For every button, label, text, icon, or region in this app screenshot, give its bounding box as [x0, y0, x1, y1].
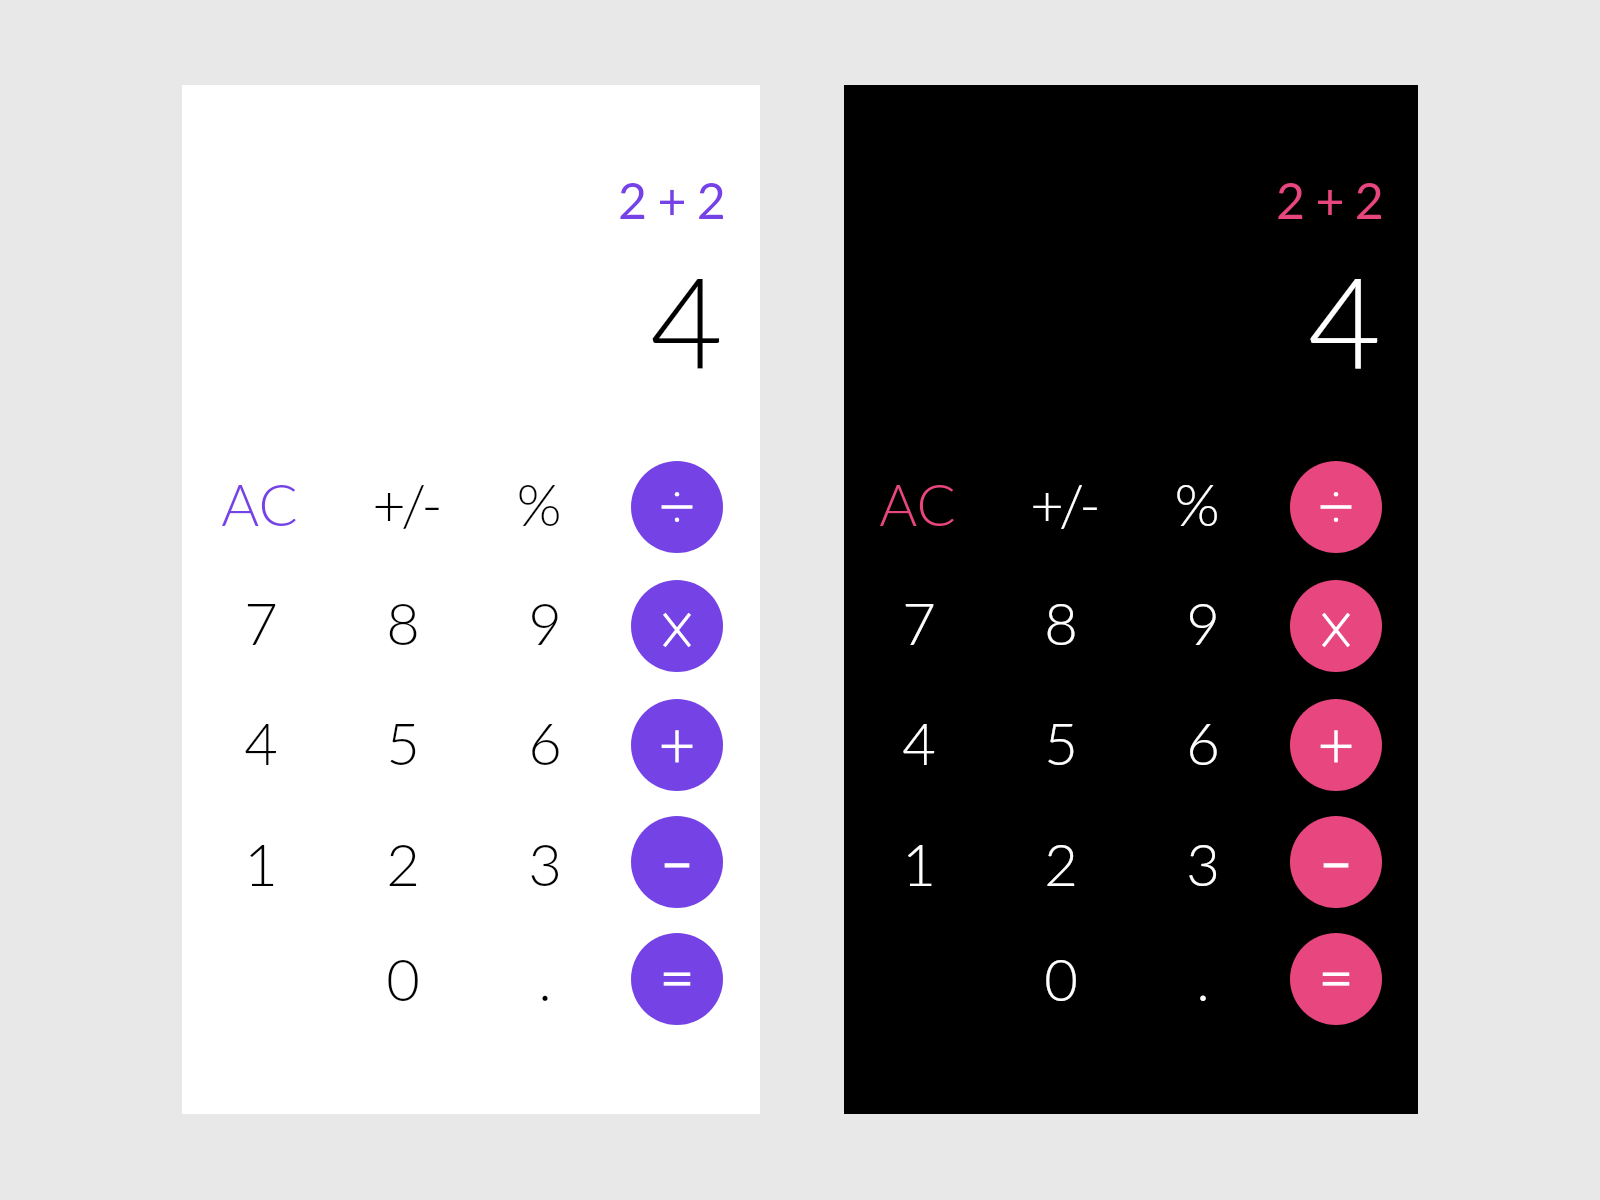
button[interactable]: 1 [190, 805, 332, 923]
staticText: . [1196, 944, 1210, 1014]
staticText: 4 [244, 708, 278, 778]
staticText: % [516, 469, 562, 539]
button[interactable]: 4 [848, 684, 990, 802]
staticText: 0 [1044, 944, 1078, 1014]
button[interactable]: % [1132, 445, 1274, 563]
button[interactable]: AC [190, 445, 332, 563]
staticText: 1 [902, 829, 936, 899]
staticText: 9 [1186, 588, 1220, 658]
button[interactable]: Equals [631, 933, 723, 1025]
button[interactable]: 2 [990, 805, 1132, 923]
button[interactable]: 6 [474, 684, 616, 802]
staticText: 4 [1308, 245, 1382, 396]
button[interactable]: Divide [631, 461, 723, 553]
button[interactable]: 5 [332, 684, 474, 802]
staticText: +/- [1030, 469, 1096, 539]
staticText: 2 + 2 [618, 170, 725, 230]
staticText: 9 [528, 588, 562, 658]
button[interactable]: 1 [848, 805, 990, 923]
staticText: 7 [244, 588, 278, 658]
button[interactable]: Add [631, 699, 723, 791]
button[interactable]: 3 [474, 805, 616, 923]
button[interactable]: Equals [1290, 933, 1382, 1025]
button[interactable]: 8 [990, 564, 1132, 682]
staticText: AC [879, 469, 956, 539]
button[interactable]: 4 [190, 684, 332, 802]
staticText: 2 [1044, 829, 1078, 899]
button[interactable]: 3 [1132, 805, 1274, 923]
button[interactable]: Subtract [631, 816, 723, 908]
button[interactable]: 0 [332, 920, 474, 1038]
staticText: 2 [386, 829, 420, 899]
button[interactable]: Multiply [1290, 580, 1382, 672]
button[interactable]: % [474, 445, 616, 563]
button[interactable]: 7 [190, 564, 332, 682]
button[interactable]: Multiply [631, 580, 723, 672]
button[interactable]: . [474, 920, 616, 1038]
staticText: 8 [386, 588, 420, 658]
button[interactable]: 0 [990, 920, 1132, 1038]
staticText: 6 [1186, 708, 1220, 778]
button[interactable]: +/- [990, 445, 1132, 563]
button[interactable]: 9 [474, 564, 616, 682]
staticText: 1 [244, 829, 278, 899]
staticText: % [1174, 469, 1220, 539]
staticText: 2 + 2 [1276, 170, 1383, 230]
staticText: 5 [1044, 708, 1078, 778]
button[interactable]: 5 [990, 684, 1132, 802]
button[interactable]: 8 [332, 564, 474, 682]
button[interactable]: Subtract [1290, 816, 1382, 908]
button[interactable]: 7 [848, 564, 990, 682]
staticText: 3 [528, 829, 562, 899]
staticText: 8 [1044, 588, 1078, 658]
staticText: +/- [372, 469, 438, 539]
staticText: . [538, 944, 552, 1014]
button[interactable]: AC [848, 445, 990, 563]
button[interactable]: Divide [1290, 461, 1382, 553]
staticText: 0 [386, 944, 420, 1014]
staticText: 6 [528, 708, 562, 778]
button[interactable]: Add [1290, 699, 1382, 791]
button[interactable]: . [1132, 920, 1274, 1038]
button[interactable]: 2 [332, 805, 474, 923]
staticText: 5 [386, 708, 420, 778]
staticText: AC [221, 469, 298, 539]
button[interactable]: 9 [1132, 564, 1274, 682]
button[interactable]: 6 [1132, 684, 1274, 802]
staticText: 4 [902, 708, 936, 778]
staticText: 3 [1186, 829, 1220, 899]
button[interactable]: +/- [332, 445, 474, 563]
staticText: 4 [650, 245, 724, 396]
staticText: 7 [902, 588, 936, 658]
